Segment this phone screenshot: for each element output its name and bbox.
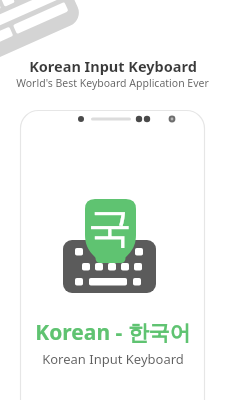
staticText: 국 <box>88 202 132 248</box>
staticText: Korean - 한국어 <box>35 318 191 347</box>
staticText: World's Best Keyboard Application Ever <box>16 76 209 90</box>
staticText: Korean Input Keyboard <box>29 56 197 76</box>
staticText: Korean Input Keyboard <box>42 350 184 368</box>
